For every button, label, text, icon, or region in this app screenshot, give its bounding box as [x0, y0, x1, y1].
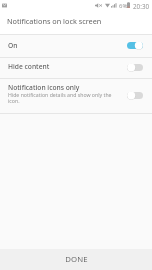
staticText: Notifications on lock screen [7, 16, 102, 26]
button[interactable]: Hide content [0, 58, 152, 78]
button[interactable]: On [0, 35, 152, 57]
staticText: 20:30 [133, 2, 150, 11]
button[interactable]: Off [127, 91, 143, 100]
staticText: Hide notification details and show only … [8, 91, 112, 105]
button[interactable]: DONE [0, 249, 152, 270]
staticText: DONE [65, 254, 88, 265]
staticText: Notification icons only [8, 83, 80, 92]
staticText: Hide content [8, 62, 50, 71]
button[interactable]: Off [127, 63, 143, 72]
button[interactable]: Notification icons only [0, 79, 152, 113]
staticText: 6% [119, 2, 128, 10]
button[interactable]: On [127, 41, 143, 50]
staticText: On [8, 41, 18, 50]
